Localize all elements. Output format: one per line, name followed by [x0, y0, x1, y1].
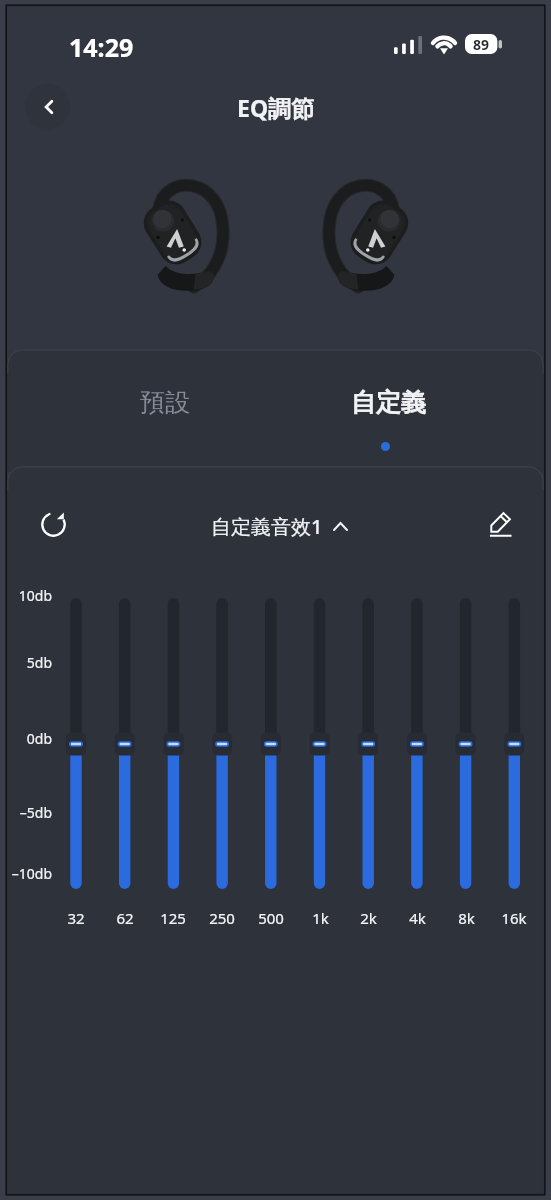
- button[interactable]: 自定義: [300, 367, 476, 437]
- staticText: 8k: [458, 908, 475, 928]
- staticText: –10db: [11, 864, 52, 883]
- staticText: 500: [258, 908, 284, 928]
- button[interactable]: 自定義音效1: [211, 512, 348, 540]
- staticText: 2k: [360, 908, 377, 928]
- staticText: 16k: [501, 908, 527, 928]
- staticText: 自定義: [351, 387, 426, 418]
- staticText: 預設: [140, 387, 190, 418]
- staticText: 5db: [26, 653, 52, 672]
- staticText: 自定義音效1: [211, 513, 323, 540]
- button[interactable]: Edit preset name: [477, 500, 523, 546]
- staticText: 89: [473, 35, 490, 54]
- staticText: 4k: [409, 908, 426, 928]
- staticText: 0db: [26, 729, 52, 748]
- staticText: 32: [67, 908, 85, 928]
- staticText: 62: [116, 908, 134, 928]
- button[interactable]: Reset equalizer: [30, 501, 76, 547]
- staticText: 14:29: [69, 30, 134, 64]
- staticText: 250: [209, 908, 235, 928]
- staticText: EQ調節: [237, 92, 315, 123]
- staticText: –5db: [19, 803, 52, 822]
- staticText: 125: [160, 908, 186, 928]
- staticText: 10db: [18, 586, 52, 605]
- button[interactable]: Back: [25, 84, 70, 129]
- staticText: 1k: [312, 908, 329, 928]
- button[interactable]: 預設: [77, 367, 253, 437]
